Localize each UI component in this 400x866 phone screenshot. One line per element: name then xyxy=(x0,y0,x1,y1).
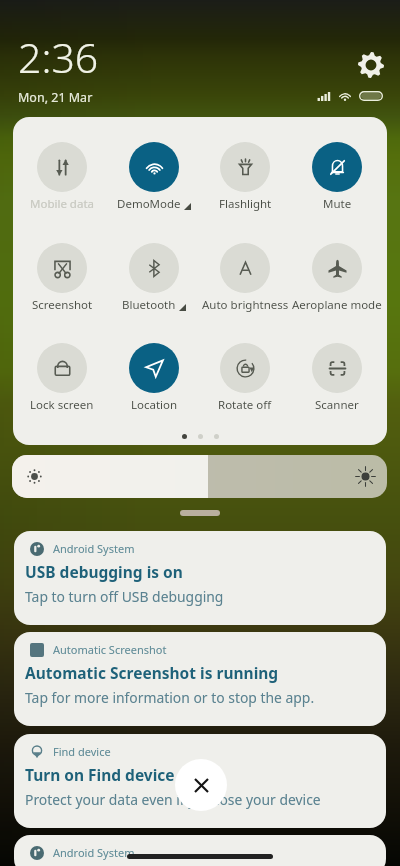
button[interactable]: Flashlight xyxy=(220,142,270,192)
button[interactable]: Find device xyxy=(14,734,386,828)
staticText: Tap to turn off USB debugging xyxy=(25,587,224,606)
button[interactable]: Automatic Screenshot xyxy=(14,632,386,726)
staticText: Tap for more information or to stop the … xyxy=(25,688,315,707)
staticText: Bluetooth xyxy=(122,297,176,313)
staticText: DemoMode xyxy=(117,196,181,212)
staticText: Location xyxy=(131,397,178,413)
button[interactable]: Bluetooth xyxy=(129,243,179,293)
staticText: Turn on Find device xyxy=(25,764,175,785)
button[interactable]: Aeroplane mode xyxy=(312,243,362,293)
staticText: Mon, 21 Mar xyxy=(18,89,93,106)
button[interactable]: Scanner xyxy=(312,343,362,393)
staticText: Mute xyxy=(323,196,352,212)
staticText: Mobile data xyxy=(30,196,94,212)
staticText: Rotate off xyxy=(218,397,272,413)
staticText: Android System xyxy=(53,541,135,556)
staticText: Find device xyxy=(53,744,111,759)
staticText: Scanner xyxy=(315,397,359,413)
button[interactable]: Rotate off xyxy=(220,343,270,393)
staticText: Screenshot xyxy=(32,297,93,313)
button[interactable] xyxy=(12,455,387,498)
button[interactable]: Android System xyxy=(14,531,386,625)
button[interactable]: Clear all notifications xyxy=(175,759,227,811)
button[interactable]: DemoMode xyxy=(129,142,179,192)
staticText: Android System xyxy=(53,845,135,860)
button[interactable]: Lock screen xyxy=(37,343,87,393)
staticText: Automatic Screenshot is running xyxy=(25,662,279,683)
button[interactable]: Mobile data xyxy=(37,142,87,192)
button[interactable]: Settings xyxy=(358,52,384,78)
staticText: Lock screen xyxy=(30,397,94,413)
staticText: Flashlight xyxy=(219,196,272,212)
button[interactable]: Android System xyxy=(14,835,386,866)
button[interactable]: Mute xyxy=(312,142,362,192)
button[interactable]: Location xyxy=(129,343,179,393)
staticText: Aeroplane mode xyxy=(292,297,382,313)
button[interactable]: Auto brightness xyxy=(220,243,270,293)
staticText: Protect your data even if you lose your … xyxy=(25,790,321,809)
staticText: USB debugging is on xyxy=(25,561,183,582)
staticText: Automatic Screenshot xyxy=(53,642,167,657)
staticText: Auto brightness xyxy=(202,297,289,313)
staticText: 2:36 xyxy=(18,29,99,85)
button[interactable]: Screenshot xyxy=(37,243,87,293)
